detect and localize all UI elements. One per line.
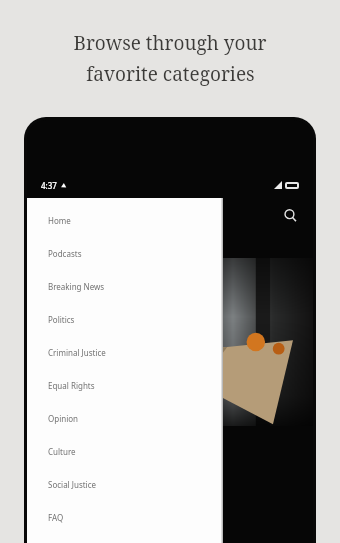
staticText: Browse through your: [73, 30, 267, 56]
staticText: Criminal Justice: [48, 347, 106, 358]
button[interactable]: Equal Rights: [27, 369, 223, 402]
staticText: Opinion: [48, 413, 79, 424]
button[interactable]: Politics: [27, 303, 223, 336]
button[interactable]: FAQ: [27, 501, 223, 534]
staticText: Coronavirus: [39, 472, 134, 492]
button[interactable]: Breaking News: [27, 270, 223, 303]
staticText: Breaking News: [48, 281, 105, 292]
staticText: Wisconsin: [39, 452, 118, 472]
staticText: favorite categories: [86, 61, 255, 87]
staticText: Social Justice: [48, 479, 97, 490]
staticText: FAQ: [48, 512, 64, 523]
staticText: Home: [48, 215, 71, 226]
staticText: Had No: [39, 512, 95, 532]
staticText: A Mostly White: [39, 432, 155, 452]
staticText: Podcasts: [48, 248, 82, 259]
button[interactable]: Home: [27, 204, 223, 237]
button[interactable]: Favorites: [27, 534, 223, 543]
button[interactable]: Social Justice: [27, 468, 223, 501]
button[interactable]: Criminal Justice: [27, 336, 223, 369]
staticText: 4:37: [41, 180, 57, 191]
button[interactable]: Search: [277, 202, 303, 228]
staticText: Equal Rights: [48, 380, 95, 391]
button[interactable]: Opinion: [27, 402, 223, 435]
staticText: Politics: [48, 314, 75, 325]
button[interactable]: Culture: [27, 435, 223, 468]
button[interactable]: Podcasts: [27, 237, 223, 270]
staticText: Culture: [48, 446, 76, 457]
